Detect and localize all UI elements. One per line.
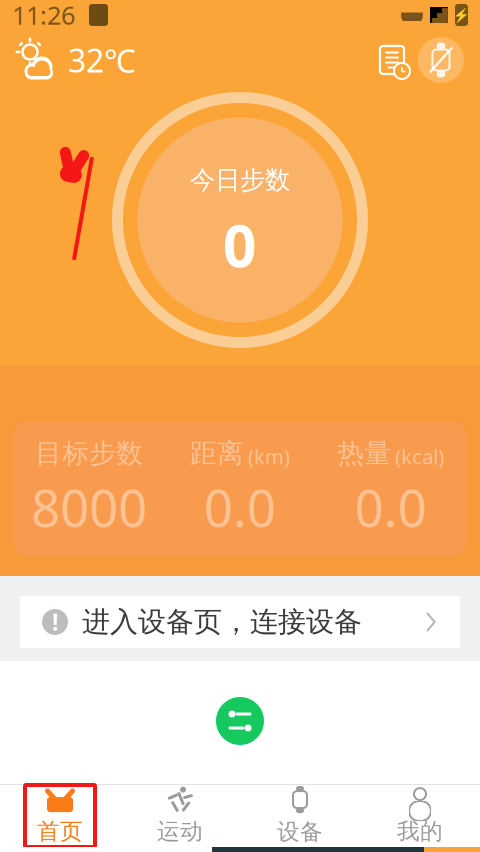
staticText: ! bbox=[52, 607, 58, 637]
button[interactable]: 运动 bbox=[120, 785, 240, 847]
button[interactable]: 我的 bbox=[360, 785, 480, 847]
button[interactable]: 32℃ bbox=[16, 35, 136, 85]
staticText: 目标步数 bbox=[35, 437, 143, 470]
button[interactable]: Device disconnected bbox=[418, 37, 464, 83]
staticText: 32℃ bbox=[68, 39, 136, 81]
staticText: 设备 bbox=[277, 818, 323, 846]
staticText: 距离 bbox=[190, 437, 244, 470]
button[interactable]: History bbox=[372, 40, 412, 80]
staticText: 进入设备页，连接设备 bbox=[82, 605, 362, 639]
staticText: 11:26 bbox=[12, 0, 75, 32]
staticText: ⚡ bbox=[453, 7, 470, 23]
staticText: 首页 bbox=[37, 818, 83, 845]
staticText: 0.0 bbox=[204, 474, 276, 541]
staticText: (km) bbox=[248, 443, 290, 470]
button[interactable]: ! bbox=[20, 596, 460, 648]
button[interactable]: 首页 bbox=[0, 785, 120, 847]
staticText: 8000 bbox=[31, 474, 147, 541]
button[interactable]: 设备 bbox=[240, 785, 360, 847]
staticText: 0 bbox=[223, 206, 257, 283]
staticText: 今日步数 bbox=[190, 164, 290, 196]
button[interactable]: Controls bbox=[212, 693, 268, 749]
staticText: (kcal) bbox=[395, 443, 444, 470]
staticText: 我的 bbox=[397, 818, 443, 845]
staticText: 0.0 bbox=[355, 474, 427, 541]
staticText: 热量 bbox=[337, 437, 391, 470]
staticText: 运动 bbox=[157, 818, 203, 845]
